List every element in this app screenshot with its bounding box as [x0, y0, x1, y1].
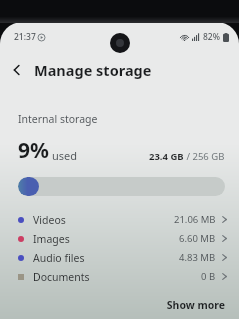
button[interactable]: Audio files	[0, 248, 239, 267]
staticText: Manage storage	[34, 60, 152, 80]
staticText: / 256 GB	[184, 150, 225, 163]
button[interactable]: Documents	[0, 267, 239, 286]
button[interactable]: Images	[0, 229, 239, 248]
staticText: 6.60 MB	[179, 232, 216, 245]
staticText: 21.06 MB	[174, 213, 216, 226]
staticText: Documents	[33, 270, 90, 284]
staticText: Show more	[166, 298, 225, 312]
staticText: Images	[33, 232, 70, 246]
staticText: 0 B	[201, 270, 216, 283]
staticText: 23.4 GB	[149, 150, 184, 163]
button[interactable]: Show more	[152, 294, 239, 316]
staticText: 9%	[18, 136, 49, 165]
staticText: Audio files	[33, 251, 85, 265]
staticText: 4.83 MB	[179, 251, 216, 264]
staticText: 82%	[203, 31, 220, 43]
button[interactable]: Videos	[0, 210, 239, 229]
button[interactable]: Back	[0, 52, 34, 88]
staticText: 21:37	[14, 31, 36, 43]
staticText: Videos	[33, 213, 66, 227]
staticText: Internal storage	[18, 112, 98, 126]
staticText: used	[52, 148, 78, 163]
